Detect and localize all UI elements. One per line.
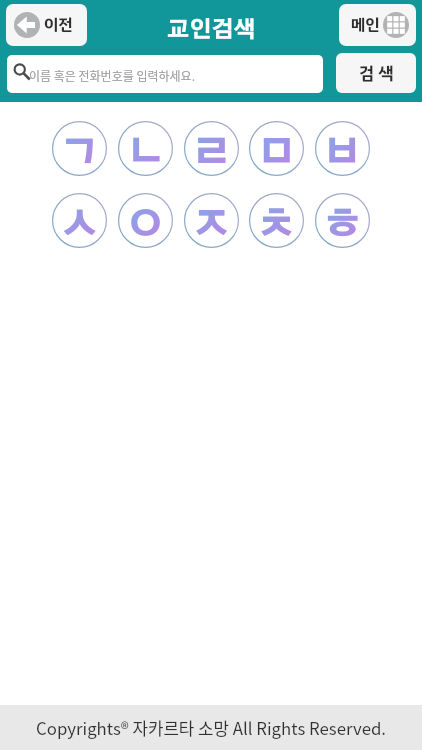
staticText: 검 색 bbox=[359, 61, 394, 86]
button[interactable]: Filter ㅇ bbox=[118, 193, 173, 248]
button[interactable]: Filter ㅊ bbox=[249, 193, 304, 248]
button[interactable]: Filter ㄴ bbox=[118, 121, 173, 176]
button[interactable]: Filter ㅈ bbox=[184, 193, 239, 248]
staticText: Copyrights® 자카르타 소망 All Rights Reserved. bbox=[36, 716, 387, 740]
staticText: ㅂ bbox=[324, 135, 361, 172]
other: Back bbox=[14, 12, 40, 38]
staticText: ㄹ bbox=[193, 135, 230, 172]
other: Main menu bbox=[383, 12, 409, 38]
button[interactable]: Filter ㅎ bbox=[315, 193, 370, 248]
button[interactable]: Back bbox=[6, 4, 87, 46]
staticText: ㄱ bbox=[61, 135, 98, 172]
staticText: ㅊ bbox=[258, 207, 295, 244]
staticText: ㅇ bbox=[127, 207, 164, 244]
staticText: 교인검색 bbox=[167, 19, 256, 41]
staticText: ㄴ bbox=[127, 135, 164, 172]
button[interactable]: Filter ㅅ bbox=[52, 193, 107, 248]
staticText: ㅅ bbox=[61, 207, 98, 244]
button[interactable]: Filter ㅂ bbox=[315, 121, 370, 176]
staticText: ㅎ bbox=[324, 207, 361, 244]
button[interactable]: Filter ㄱ bbox=[52, 121, 107, 176]
button[interactable]: 검 색 bbox=[336, 53, 416, 93]
staticText: ㅈ bbox=[193, 207, 230, 244]
button[interactable]: 이름 혹은 전화번호를 입력하세요. bbox=[7, 55, 323, 93]
staticText: ㅁ bbox=[258, 135, 295, 172]
button[interactable]: Filter ㅁ bbox=[249, 121, 304, 176]
staticText: 이름 혹은 전화번호를 입력하세요. bbox=[29, 67, 195, 84]
button[interactable]: Filter ㄹ bbox=[184, 121, 239, 176]
button[interactable]: 메인 bbox=[339, 4, 416, 46]
staticText: 메인 bbox=[351, 13, 380, 37]
staticText: 이전 bbox=[44, 13, 73, 37]
